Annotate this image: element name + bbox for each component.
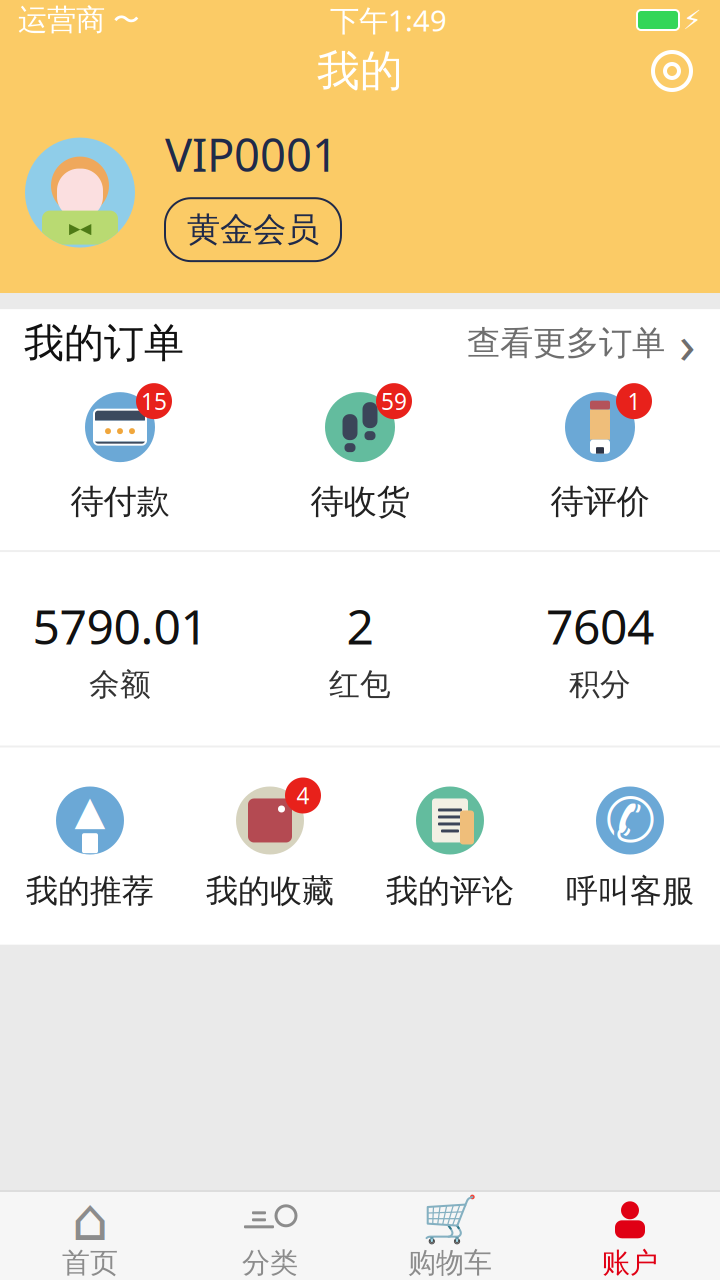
staticText: ⚡︎ [683, 5, 702, 35]
staticText: 待评价 [550, 481, 649, 522]
button[interactable]: 我的评论 [360, 773, 540, 915]
staticText: › [665, 308, 696, 378]
staticText: ▸◂ [69, 215, 91, 240]
staticText: 首页 [62, 1246, 118, 1280]
button[interactable]: 分类 [180, 1192, 360, 1280]
button[interactable]: 2 [240, 584, 480, 713]
button[interactable]: 15 [0, 377, 240, 528]
button[interactable]: 账户 [540, 1192, 720, 1280]
button[interactable]: 7604 [480, 584, 720, 713]
staticText: 分类 [242, 1246, 298, 1280]
button[interactable]: ✆ [540, 773, 720, 915]
staticText: 黄金会员 [187, 209, 319, 250]
staticText: 余额 [89, 666, 151, 703]
button[interactable]: ⌂ [0, 1192, 180, 1280]
staticText: ⌂ [71, 1186, 108, 1253]
staticText: 红包 [329, 666, 391, 703]
staticText: 7604 [546, 594, 654, 658]
staticText: 2 [346, 594, 373, 658]
staticText: 购物车 [408, 1246, 492, 1280]
staticText: ✆ [604, 786, 655, 855]
button[interactable]: 🛒 [360, 1192, 540, 1280]
staticText: 查看更多订单 [467, 323, 665, 364]
staticText: 运营商 [18, 2, 105, 38]
staticText: 15 [141, 386, 167, 416]
staticText: 我的订单 [24, 319, 184, 368]
button[interactable]: 4 [180, 773, 360, 915]
staticText: 〜 [105, 4, 140, 36]
button[interactable]: 1 [480, 377, 720, 528]
staticText: 呼叫客服 [566, 871, 694, 911]
staticText: 我的推荐 [26, 871, 154, 911]
staticText: 我的评论 [386, 871, 514, 911]
staticText: ▲ [74, 788, 105, 833]
staticText: 🛒 [422, 1194, 478, 1246]
button[interactable]: 黄金会员 [165, 198, 341, 261]
staticText: 账户 [602, 1246, 658, 1280]
button[interactable]: 设置 [650, 49, 720, 93]
staticText: 待付款 [70, 481, 169, 522]
button[interactable]: 5790.01 [0, 584, 240, 713]
staticText: 下午1:49 [330, 0, 447, 39]
staticText: 我的 [317, 45, 403, 97]
staticText: 4 [296, 780, 309, 810]
staticText: 59 [381, 386, 407, 416]
staticText: 我的收藏 [206, 871, 334, 911]
staticText: 待收货 [310, 481, 409, 522]
button[interactable]: 我的订单 [0, 309, 720, 377]
button[interactable]: 59 [240, 377, 480, 528]
staticText: 积分 [569, 666, 631, 703]
staticText: VIP0001 [165, 124, 338, 184]
staticText: 5790.01 [32, 594, 207, 658]
staticText: 1 [627, 386, 640, 416]
button[interactable]: ▲ [0, 773, 180, 915]
